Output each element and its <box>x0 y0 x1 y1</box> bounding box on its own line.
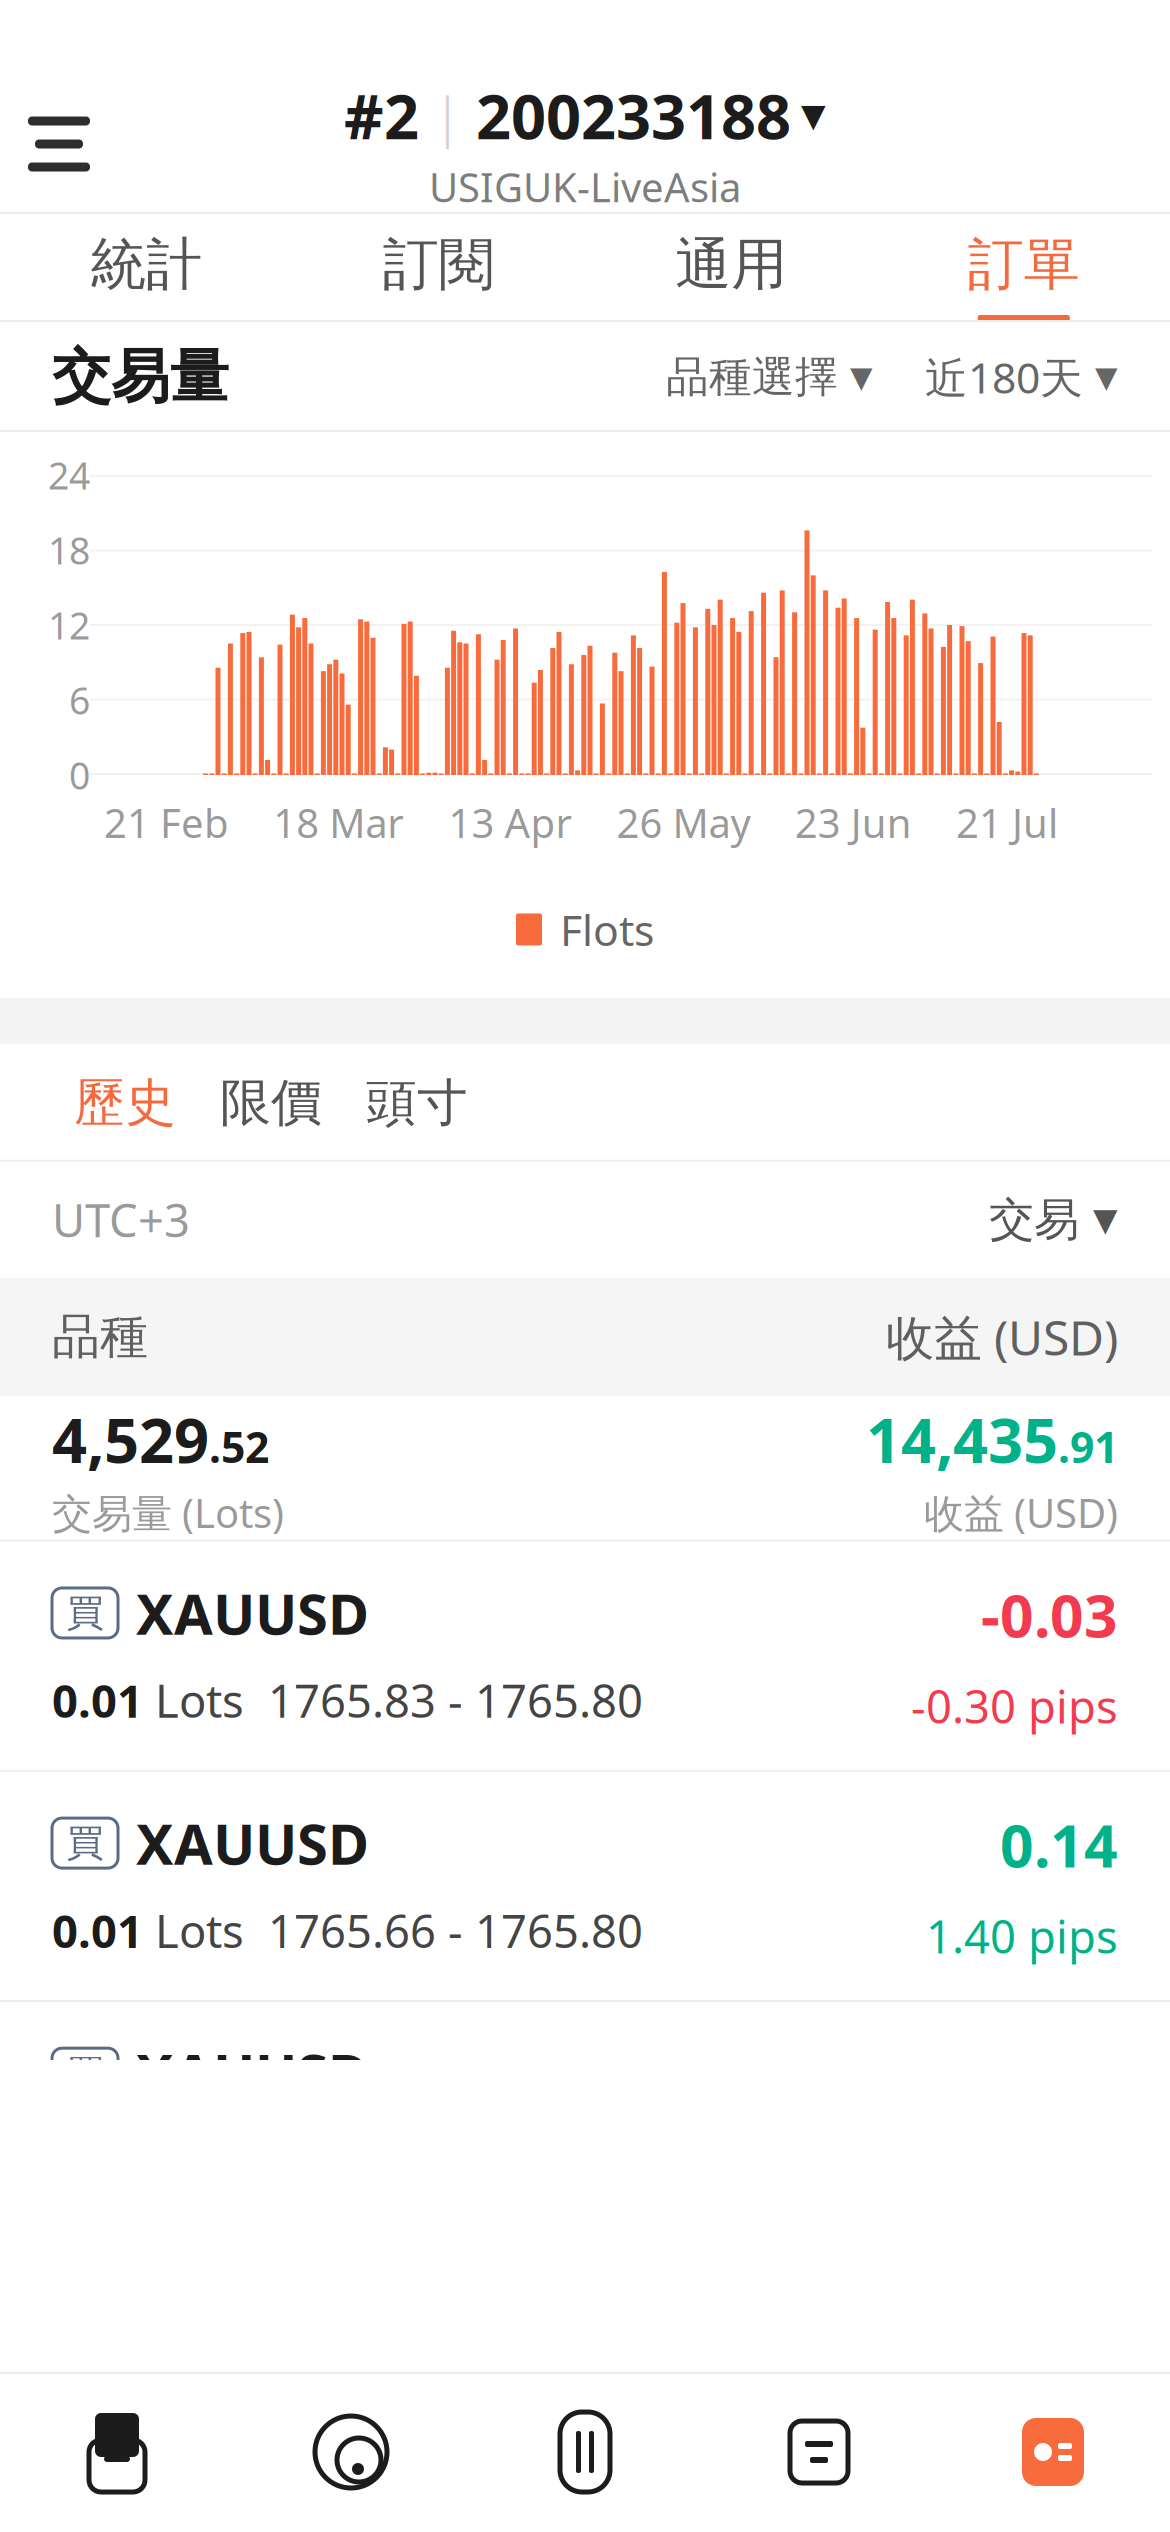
staticText: 21 Feb <box>104 796 229 849</box>
staticText: USIGUK-LiveAsia <box>429 160 741 213</box>
staticText: 近180天 <box>925 349 1083 405</box>
staticText: Lots <box>143 1900 268 1960</box>
button[interactable]: 近180天 <box>925 339 1118 415</box>
staticText: 13 Apr <box>448 796 572 849</box>
staticText: 訂單 <box>968 230 1080 299</box>
staticText: .03 <box>1034 1576 1118 1654</box>
staticText: 0.01 <box>52 1900 143 1960</box>
button[interactable]: 限價 <box>198 1056 344 1150</box>
staticText: ▼ <box>1093 1202 1118 1238</box>
staticText: -0 <box>981 1576 1034 1654</box>
button[interactable]: Signals <box>234 2372 468 2532</box>
staticText: 4,529 <box>52 1398 209 1480</box>
staticText: 歷史 <box>74 1072 176 1134</box>
button[interactable]: 品種選擇 <box>666 341 873 413</box>
staticText: 6 <box>69 675 90 725</box>
staticText: 買 <box>66 1590 103 1636</box>
staticText: 買 <box>66 1820 103 1866</box>
button[interactable]: 交易 <box>989 1182 1118 1258</box>
staticText: 14,435 <box>866 1398 1058 1480</box>
staticText: 0 <box>69 750 90 800</box>
staticText: 1765.66 - 1765.80 <box>268 1900 643 1960</box>
button[interactable]: 統計 <box>0 214 292 322</box>
staticText: 23 Jun <box>795 796 912 849</box>
button[interactable]: 買 <box>0 1772 1170 2002</box>
staticText: 交易量 (Lots) <box>52 1486 284 1539</box>
staticText: 0.01 <box>52 1670 143 1730</box>
staticText: 統計 <box>90 230 202 299</box>
staticText: 收益 (USD) <box>924 1486 1118 1539</box>
staticText: 200233188 <box>476 75 791 156</box>
button[interactable]: 買 <box>0 2002 1170 2060</box>
button[interactable]: 通用 <box>585 214 877 322</box>
button[interactable]: #2 <box>328 69 842 219</box>
button[interactable]: Home <box>0 2372 234 2532</box>
staticText: ▼ <box>791 97 826 134</box>
staticText: 通用 <box>675 230 787 299</box>
staticText: #2 <box>344 75 419 156</box>
staticText: | <box>419 80 476 151</box>
staticText: 26 May <box>617 796 751 849</box>
staticText: -0.30 pips <box>911 1676 1118 1736</box>
staticText: XAUUSD <box>136 2036 369 2110</box>
staticText: 頭寸 <box>366 1072 468 1134</box>
button[interactable]: Chat <box>702 2372 936 2532</box>
staticText: ▼ <box>850 360 873 394</box>
staticText: ▼ <box>1095 360 1118 394</box>
staticText: 21 Jul <box>956 796 1058 849</box>
staticText: 12 <box>48 600 90 650</box>
staticText: Flots <box>560 901 654 958</box>
staticText: 交易量 <box>52 341 229 413</box>
button[interactable]: 頭寸 <box>344 1056 490 1150</box>
staticText: 品種選擇 <box>666 351 838 403</box>
button[interactable]: Trade <box>468 2372 702 2532</box>
button[interactable]: 訂閱 <box>292 214 585 322</box>
staticText: UTC+3 <box>52 1190 190 1250</box>
staticText: Lots <box>143 1670 268 1730</box>
staticText: .91 <box>1058 1418 1118 1475</box>
button[interactable]: Menu <box>0 94 126 193</box>
staticText: 0 <box>1000 1806 1034 1884</box>
staticText: XAUUSD <box>136 1806 369 1880</box>
staticText: 18 <box>48 525 90 575</box>
staticText: 收益 (USD) <box>886 1305 1118 1369</box>
staticText: .14 <box>1034 1806 1118 1884</box>
staticText: XAUUSD <box>136 1576 369 1650</box>
button[interactable]: 買 <box>0 1542 1170 1772</box>
staticText: 品種 <box>52 1307 148 1366</box>
staticText: 1.40 pips <box>926 1906 1118 1966</box>
staticText: 限價 <box>220 1072 322 1134</box>
button[interactable]: 訂單 <box>877 214 1170 322</box>
button[interactable]: Profile <box>936 2372 1170 2532</box>
staticText: 訂閱 <box>383 230 495 299</box>
staticText: .52 <box>209 1418 269 1475</box>
staticText: 1765.83 - 1765.80 <box>268 1670 643 1730</box>
button[interactable]: 歷史 <box>52 1056 198 1150</box>
staticText: 24 <box>48 450 90 500</box>
staticText: 18 Mar <box>273 796 404 849</box>
staticText: 買 <box>66 2050 103 2096</box>
staticText: 交易 <box>989 1192 1079 1248</box>
